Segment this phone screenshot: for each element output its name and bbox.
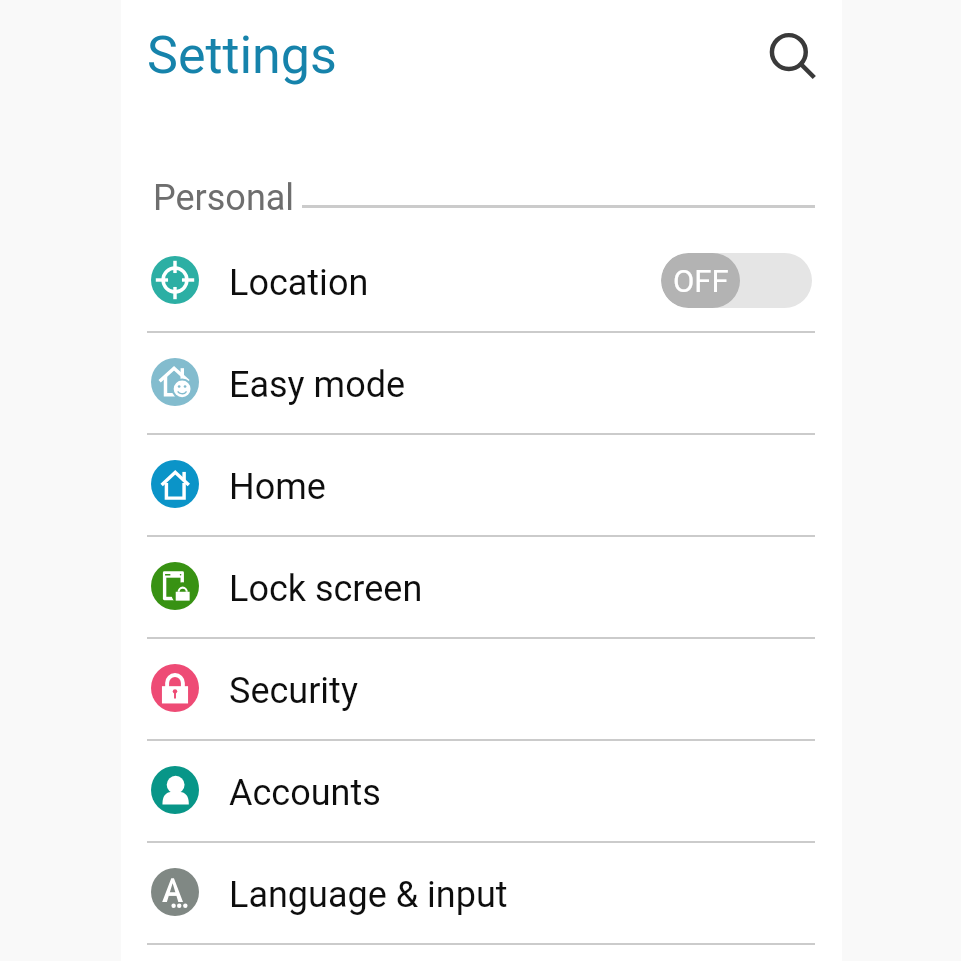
- staticText: Security: [229, 670, 358, 712]
- button[interactable]: Home: [121, 434, 842, 536]
- staticText: Personal: [153, 177, 295, 219]
- button[interactable]: Location: [121, 230, 842, 332]
- staticText: Lock screen: [229, 568, 423, 610]
- staticText: Language & input: [229, 874, 508, 916]
- staticText: OFF: [673, 263, 729, 299]
- button[interactable]: Lock screen: [121, 536, 842, 638]
- button[interactable]: Security: [121, 638, 842, 740]
- staticText: Accounts: [229, 772, 381, 814]
- staticText: Easy mode: [229, 364, 406, 406]
- staticText: Settings: [147, 25, 337, 86]
- staticText: Home: [229, 466, 326, 508]
- button[interactable]: Accounts: [121, 740, 842, 842]
- button[interactable]: Search: [755, 20, 827, 92]
- staticText: Location: [229, 262, 369, 304]
- button[interactable]: Language & input: [121, 842, 842, 944]
- button[interactable]: Location switch, off: [661, 253, 812, 308]
- button[interactable]: Easy mode: [121, 332, 842, 434]
